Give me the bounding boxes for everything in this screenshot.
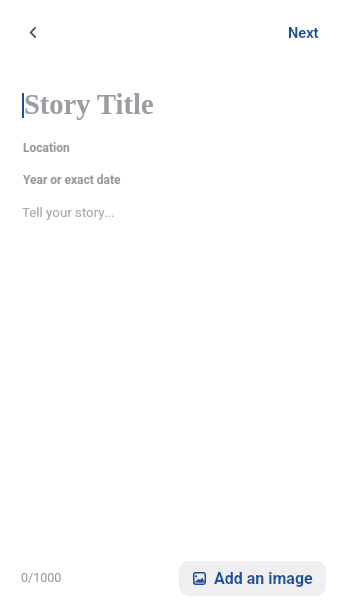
button[interactable]: Next	[280, 18, 327, 47]
staticText: Year or exact date	[23, 173, 121, 187]
staticText: 0/1000	[21, 570, 62, 585]
staticText: Location	[23, 141, 70, 155]
staticText: Add an image	[214, 569, 313, 588]
staticText: Next	[288, 24, 319, 41]
button[interactable]: Back	[12, 11, 54, 53]
staticText: Story Title	[24, 89, 154, 121]
button[interactable]: Add an image	[179, 561, 326, 596]
staticText: Tell your story...	[22, 205, 115, 221]
